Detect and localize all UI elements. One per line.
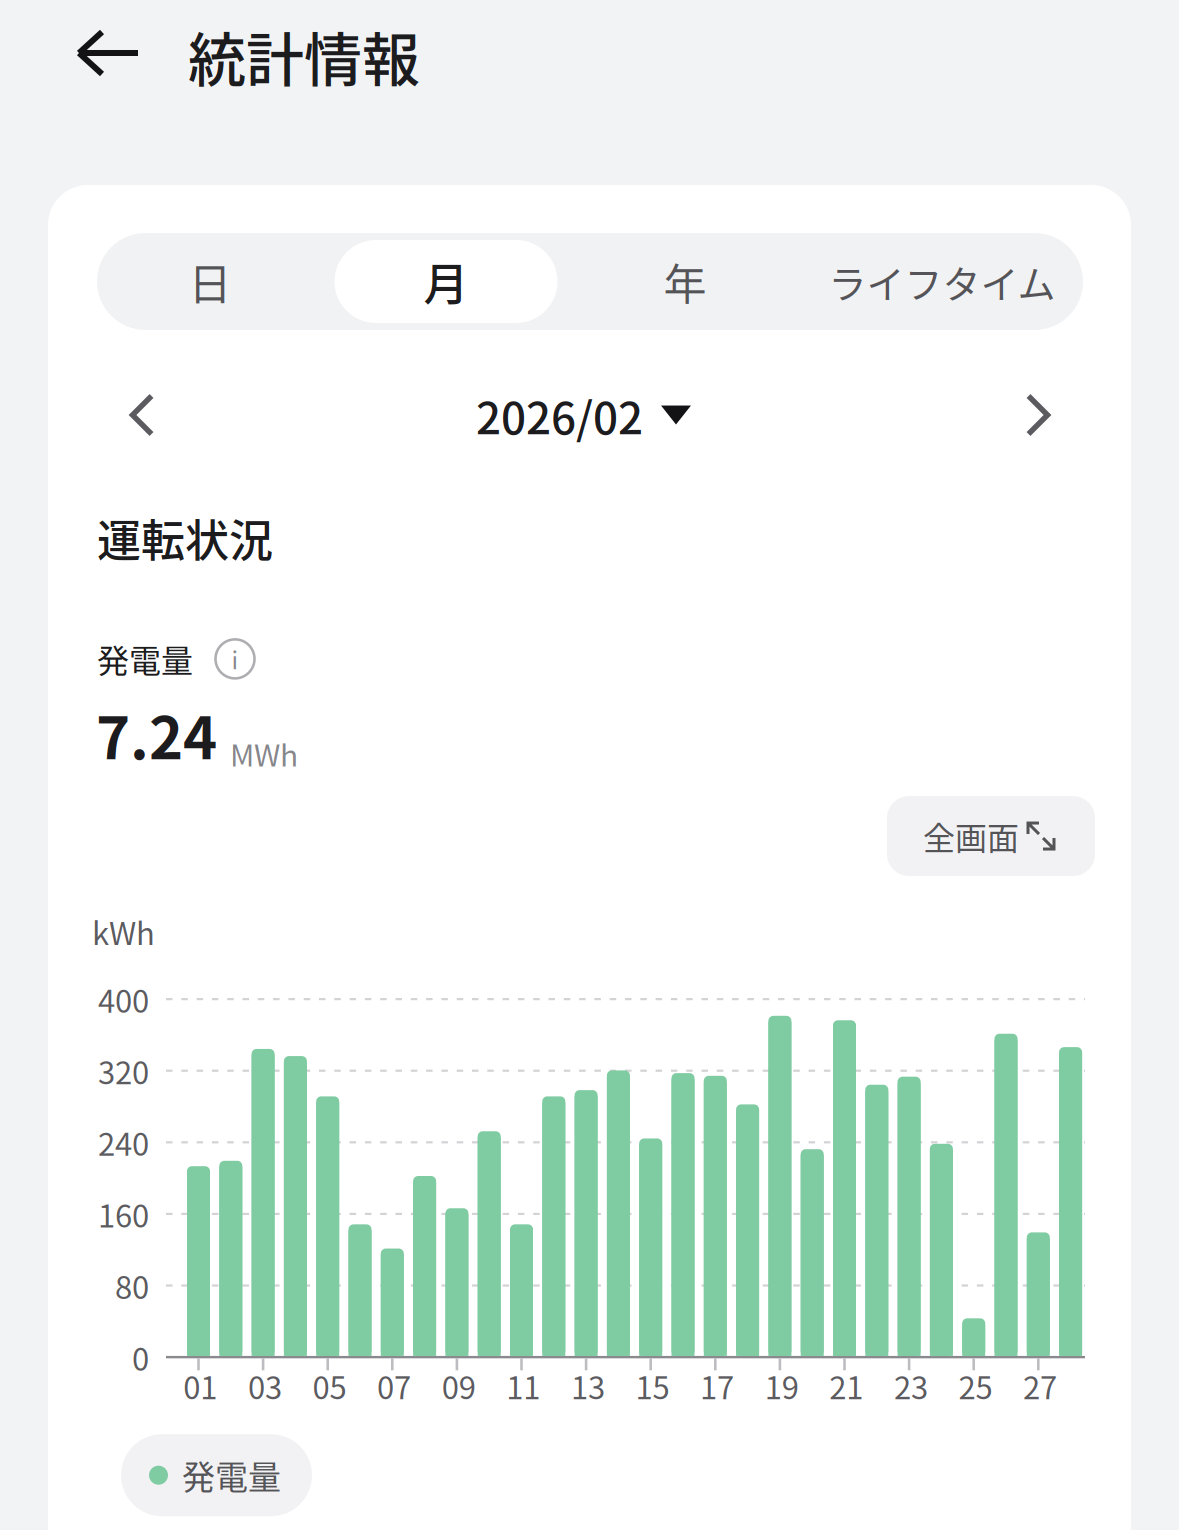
staticText: 全画面 [923,813,1019,859]
button[interactable]: 発電量 [121,1434,312,1516]
staticText: 80 [115,1263,149,1308]
staticText: 23 [894,1363,928,1408]
staticText: 発電量 [182,1451,281,1499]
staticText: kWh [92,909,155,954]
button[interactable]: Previous period [110,383,174,447]
staticText: 月 [423,249,468,314]
staticText: 7.24 [96,692,217,776]
staticText: 19 [765,1363,799,1408]
staticText: 01 [183,1363,217,1408]
button[interactable]: 月 [323,233,569,330]
button[interactable]: ライフタイム [801,233,1083,330]
button[interactable]: 日 [97,233,323,330]
staticText: 21 [829,1363,863,1408]
staticText: 240 [98,1120,149,1165]
button[interactable]: Next period [1006,383,1070,447]
staticText: 07 [377,1363,411,1408]
staticText: ライフタイム [828,254,1055,309]
staticText: 15 [635,1363,669,1408]
staticText: 運転状況 [97,506,273,570]
staticText: 05 [312,1363,346,1408]
staticText: 03 [248,1363,282,1408]
button[interactable]: 年 [569,233,801,330]
staticText: MWh [230,732,298,775]
staticText: 0 [132,1335,149,1380]
staticText: 2026/02 [476,383,643,447]
staticText: 320 [98,1048,149,1093]
staticText: 400 [98,977,149,1022]
button[interactable]: Back [0,0,188,108]
staticText: 25 [958,1363,992,1408]
staticText: 09 [442,1363,476,1408]
staticText: 統計情報 [188,14,420,98]
staticText: 11 [506,1363,540,1408]
button[interactable]: 全画面 [887,796,1095,876]
staticText: i [231,641,238,676]
staticText: 発電量 [97,636,193,682]
staticText: 160 [98,1191,149,1236]
staticText: 13 [571,1363,605,1408]
staticText: 27 [1023,1363,1057,1408]
staticText: 日 [188,250,231,313]
staticText: 年 [663,250,706,313]
staticText: 17 [700,1363,734,1408]
